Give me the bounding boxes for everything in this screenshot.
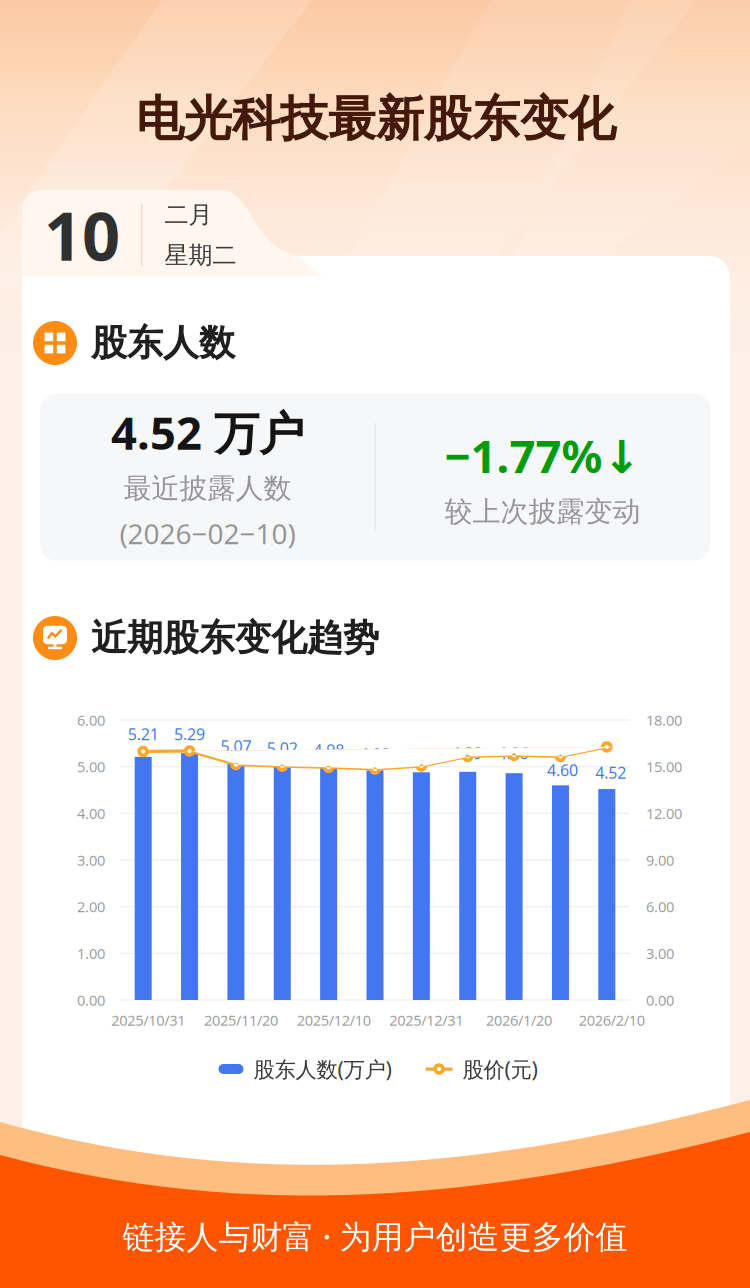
staticText: 股价(元) [462, 1055, 537, 1083]
staticText: 2025/10/31 [111, 1010, 185, 1030]
staticText: 2026/2/10 [579, 1010, 645, 1030]
staticText: 5.00 [77, 757, 105, 776]
staticText: 4.89 [451, 742, 482, 764]
staticText: 2025/11/20 [204, 1010, 278, 1030]
staticText: 18.00 [646, 710, 682, 730]
staticText: 链接人与财富 · 为用户创造更多价值 [122, 1215, 627, 1257]
staticText: 5.07 [220, 735, 251, 757]
staticText: 10 [44, 191, 120, 279]
staticText: 4.92 [359, 743, 390, 765]
staticText: −1.77%↓ [445, 425, 641, 485]
staticText: 星期二 [164, 240, 236, 270]
staticText: 4.86 [498, 742, 529, 764]
staticText: 2025/12/31 [389, 1010, 463, 1030]
staticText: 股东人数 [91, 321, 235, 365]
staticText: 2025/12/10 [297, 1010, 371, 1030]
staticText: 4.52 万户 [111, 402, 304, 462]
staticText: 电光科技最新股东变化 [136, 89, 616, 148]
staticText: 2.00 [77, 897, 105, 916]
staticText: 4.52 [595, 762, 626, 783]
staticText: 15.00 [646, 757, 682, 776]
staticText: 6.00 [77, 710, 105, 730]
staticText: 4.60 [547, 759, 578, 781]
staticText: 5.02 [267, 737, 298, 759]
staticText: 2026/1/20 [486, 1010, 552, 1030]
staticText: 4.00 [77, 804, 105, 823]
staticText: 9.00 [646, 850, 674, 870]
staticText: 3.00 [77, 850, 105, 870]
staticText: 5.21 [128, 723, 159, 745]
staticText: (2026−02−10) [119, 515, 295, 552]
staticText: 12.00 [646, 804, 682, 823]
staticText: 0.00 [646, 990, 674, 1010]
staticText: 最近披露人数 [123, 471, 291, 506]
staticText: 0.00 [77, 990, 105, 1010]
staticText: 近期股东变化趋势 [91, 616, 379, 660]
staticText: 4.88 [406, 747, 437, 768]
staticText: 较上次披露变动 [445, 494, 641, 529]
staticText: 二月 [164, 200, 212, 229]
staticText: 股东人数(万户) [253, 1055, 391, 1083]
staticText: 6.00 [646, 897, 674, 916]
staticText: 4.98 [313, 739, 344, 761]
staticText: 3.00 [646, 944, 674, 963]
staticText: 1.00 [77, 944, 105, 963]
staticText: 5.29 [174, 723, 205, 744]
